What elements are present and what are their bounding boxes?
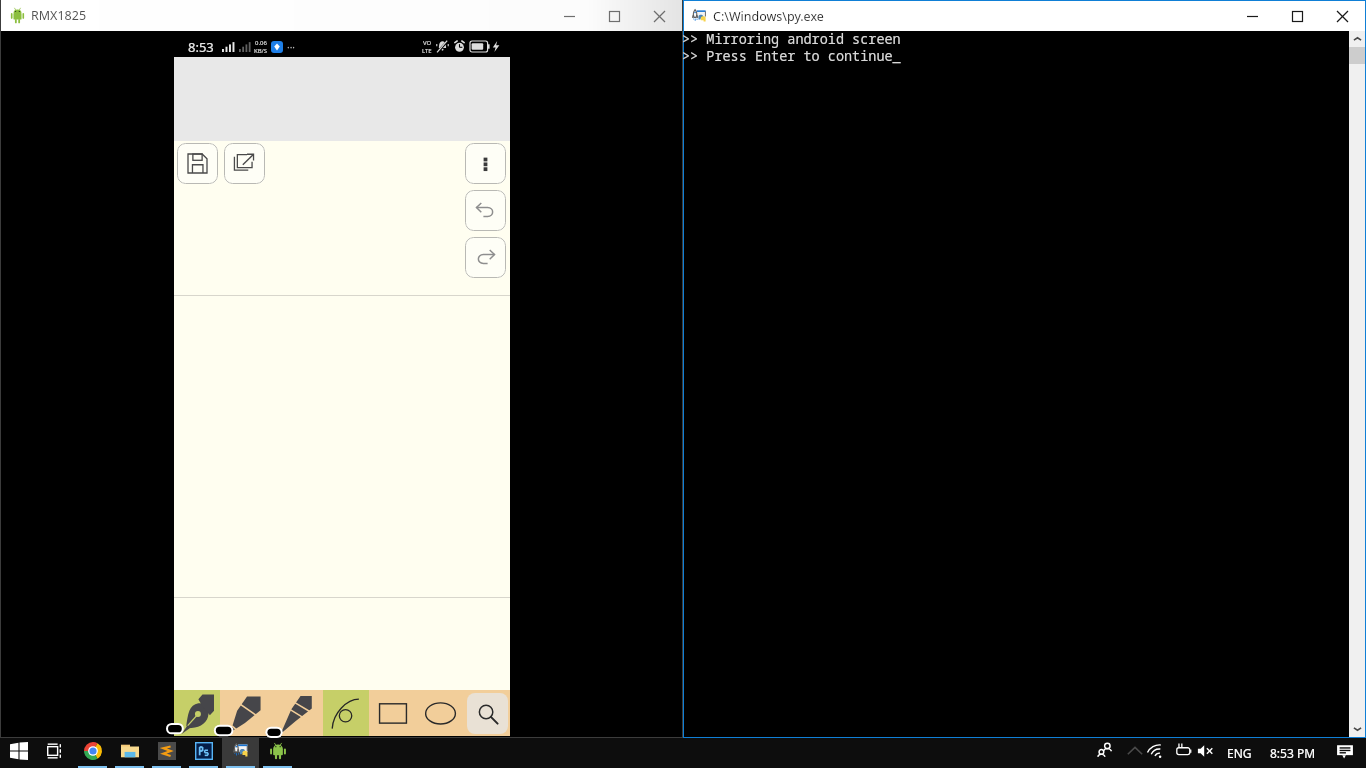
button[interactable]: Photoshop [185, 738, 222, 768]
button[interactable]: Battery [1172, 738, 1195, 768]
staticText: ··· [287, 40, 296, 54]
button[interactable]: Show hidden icons [1120, 738, 1150, 768]
button[interactable]: Maximize [1275, 1, 1320, 31]
button[interactable]: File Explorer [111, 738, 148, 768]
button[interactable]: Ellipse [417, 690, 465, 736]
staticText: ENG [1227, 745, 1252, 761]
button[interactable]: Maximize [592, 1, 637, 31]
button[interactable]: Curve [323, 690, 369, 736]
button[interactable]: Python [222, 738, 259, 768]
button[interactable]: Undo [465, 190, 506, 231]
button[interactable]: Sublime Text [148, 738, 185, 768]
button[interactable]: Google Chrome [74, 738, 111, 768]
button[interactable]: 8:53 PM [1261, 738, 1324, 768]
button[interactable]: Task view [37, 738, 74, 768]
button[interactable]: Brush pen [220, 690, 272, 736]
button[interactable]: Redo [465, 237, 506, 278]
staticText: VO [423, 39, 432, 47]
button[interactable]: Rectangle [369, 690, 417, 736]
staticText: C:\Windows\py.exe [713, 8, 824, 25]
button[interactable]: Save [177, 143, 218, 184]
button[interactable]: Start [0, 738, 37, 768]
button[interactable]: More options [465, 143, 506, 184]
button[interactable]: Notifications [1324, 738, 1366, 768]
staticText: >> Mirroring android screen >> Press Ent… [682, 30, 901, 65]
button[interactable]: Export [224, 143, 265, 184]
button[interactable]: Network [1150, 738, 1172, 768]
button[interactable]: Zoom [467, 693, 508, 734]
staticText: 8:53 [188, 38, 214, 56]
button[interactable]: Fountain pen [174, 690, 220, 736]
staticText: 0.06 [255, 39, 267, 47]
staticText: KB/S [254, 47, 268, 55]
button[interactable]: Minimize [547, 1, 592, 31]
staticText: RMX1825 [31, 7, 87, 24]
button[interactable]: Close [1320, 1, 1365, 31]
button[interactable]: People [1090, 738, 1120, 768]
button[interactable]: Scroll up [1349, 31, 1365, 47]
button[interactable]: ENG [1217, 738, 1261, 768]
button[interactable]: Scroll down [1349, 721, 1365, 737]
button[interactable]: Android [259, 738, 296, 768]
button[interactable]: Minimize [1230, 1, 1275, 31]
staticText: 8:53 PM [1270, 745, 1316, 761]
button[interactable]: Close [637, 1, 682, 31]
staticText: LTE [422, 47, 432, 55]
button[interactable]: Pencil [272, 690, 323, 736]
button[interactable]: Volume [1195, 738, 1217, 768]
